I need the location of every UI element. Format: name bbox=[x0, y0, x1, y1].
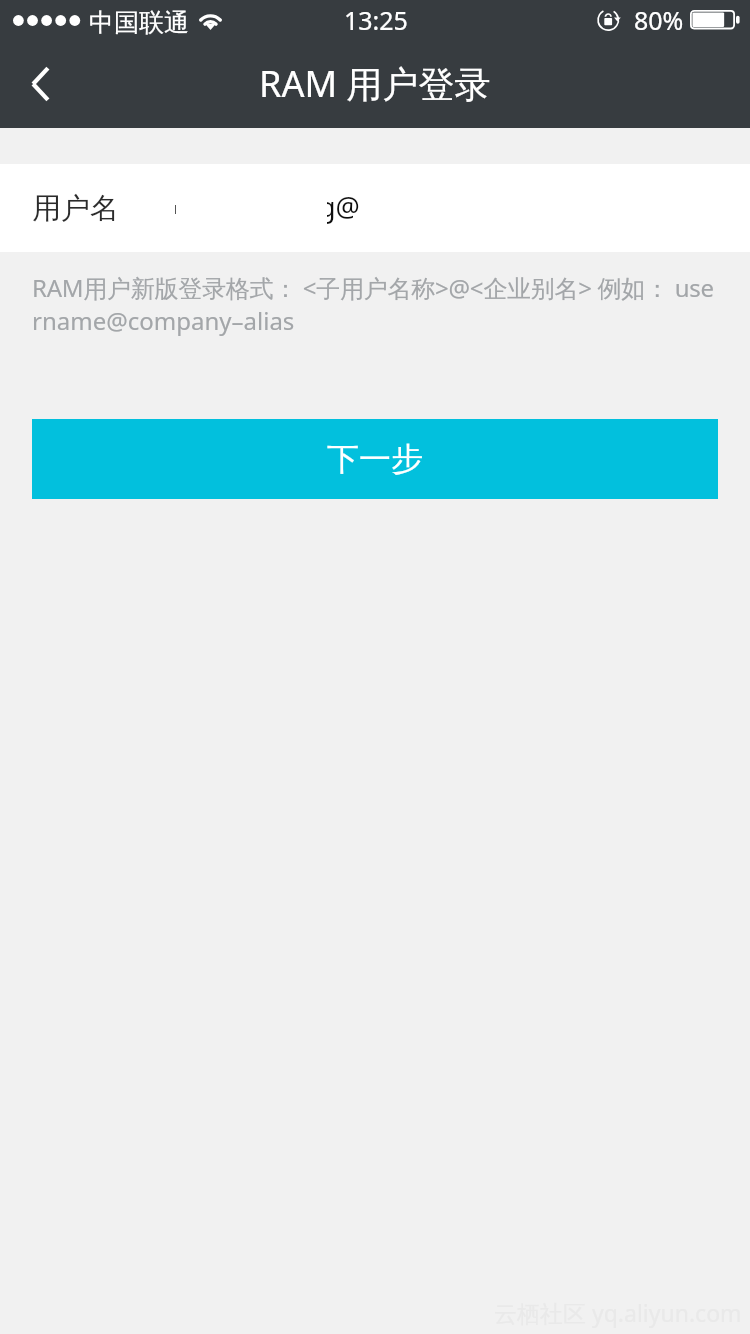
staticText: rname@company–alias bbox=[32, 304, 295, 337]
button[interactable]: 下一步 bbox=[32, 419, 718, 499]
staticText: 80% bbox=[634, 3, 684, 37]
button[interactable]: 用户名 输入框 bbox=[0, 164, 750, 252]
staticText: RAM 用户登录 bbox=[259, 59, 491, 108]
staticText: RAM用户新版登录格式： <子用户名称>@<企业别名> 例如： use bbox=[32, 271, 714, 304]
staticText: g@ bbox=[319, 188, 360, 225]
staticText: 下一步 bbox=[327, 439, 423, 479]
staticText: 13:25 bbox=[344, 3, 408, 37]
staticText: 用户名 bbox=[32, 190, 119, 227]
button[interactable]: Back bbox=[0, 40, 88, 128]
staticText: 中国联通 bbox=[89, 7, 189, 38]
